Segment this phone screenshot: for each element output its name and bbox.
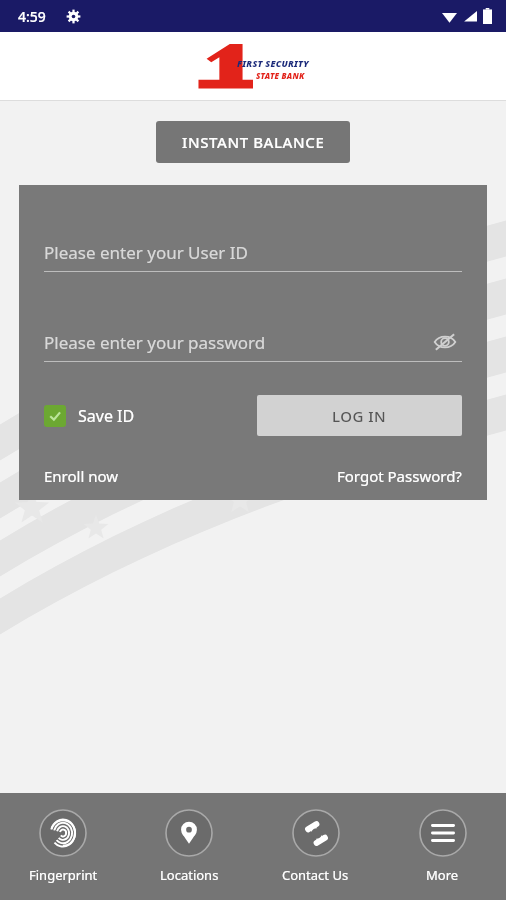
- staticText: Please enter your password: [44, 331, 266, 354]
- staticText: Locations: [160, 866, 219, 884]
- button[interactable]: Enroll now: [44, 466, 119, 486]
- button[interactable]: Contact Us: [252, 793, 379, 900]
- button[interactable]: More: [379, 793, 506, 900]
- staticText: LOG IN: [332, 406, 387, 426]
- button[interactable]: Please enter your password: [44, 323, 462, 361]
- staticText: Forgot Password?: [337, 466, 462, 486]
- button[interactable]: Fingerprint: [0, 793, 126, 900]
- staticText: FIRST SECURITY: [237, 57, 309, 69]
- button[interactable]: Please enter your User ID: [44, 233, 462, 271]
- staticText: Save ID: [78, 405, 135, 427]
- staticText: 4:59: [18, 7, 46, 26]
- staticText: Contact Us: [282, 866, 349, 884]
- button[interactable]: INSTANT BALANCE: [156, 121, 350, 163]
- button[interactable]: Show password: [428, 325, 462, 359]
- staticText: Fingerprint: [29, 866, 98, 884]
- staticText: STATE BANK: [256, 70, 305, 81]
- staticText: INSTANT BALANCE: [182, 132, 325, 152]
- staticText: Enroll now: [44, 466, 119, 486]
- staticText: Please enter your User ID: [44, 241, 248, 264]
- button[interactable]: Save ID: [44, 405, 135, 427]
- staticText: More: [426, 866, 459, 884]
- button[interactable]: Locations: [126, 793, 252, 900]
- button[interactable]: Forgot Password?: [337, 466, 462, 486]
- button[interactable]: LOG IN: [257, 395, 462, 436]
